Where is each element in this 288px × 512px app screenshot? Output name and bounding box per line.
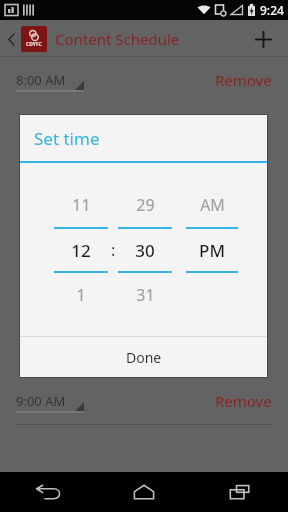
staticText: 11: [72, 194, 91, 216]
button[interactable]: Add: [246, 22, 280, 56]
staticText: Done: [126, 348, 162, 367]
button[interactable]: 11: [54, 183, 108, 317]
staticText: Content Schedule: [55, 29, 180, 49]
staticText: 9:24: [260, 2, 284, 18]
button[interactable]: 29: [118, 183, 172, 317]
button[interactable]: 9:00 AM: [16, 389, 84, 413]
staticText: 9:00 AM: [16, 392, 66, 410]
button[interactable]: AM: [186, 183, 238, 317]
staticText: AM: [200, 194, 225, 216]
staticText: 30: [135, 239, 155, 262]
staticText: 31: [136, 284, 155, 306]
button[interactable]: Done: [20, 337, 267, 377]
staticText: Remove: [215, 70, 272, 90]
button[interactable]: Recent apps: [192, 472, 288, 512]
staticText: CDYFC: [26, 41, 42, 48]
button[interactable]: Remove: [215, 391, 272, 411]
staticText: 12: [71, 239, 91, 262]
button[interactable]: Up: [4, 24, 18, 54]
staticText: Remove: [215, 391, 272, 411]
button[interactable]: 8:00 AM: [16, 68, 84, 92]
staticText: Set time: [34, 127, 100, 150]
staticText: 1: [76, 284, 86, 306]
staticText: 8:00 AM: [16, 71, 66, 89]
staticText: 29: [136, 194, 155, 216]
staticText: :: [111, 239, 116, 261]
button[interactable]: Home: [96, 472, 192, 512]
staticText: PM: [199, 239, 225, 262]
button[interactable]: Back: [0, 472, 96, 512]
button[interactable]: Remove: [215, 70, 272, 90]
